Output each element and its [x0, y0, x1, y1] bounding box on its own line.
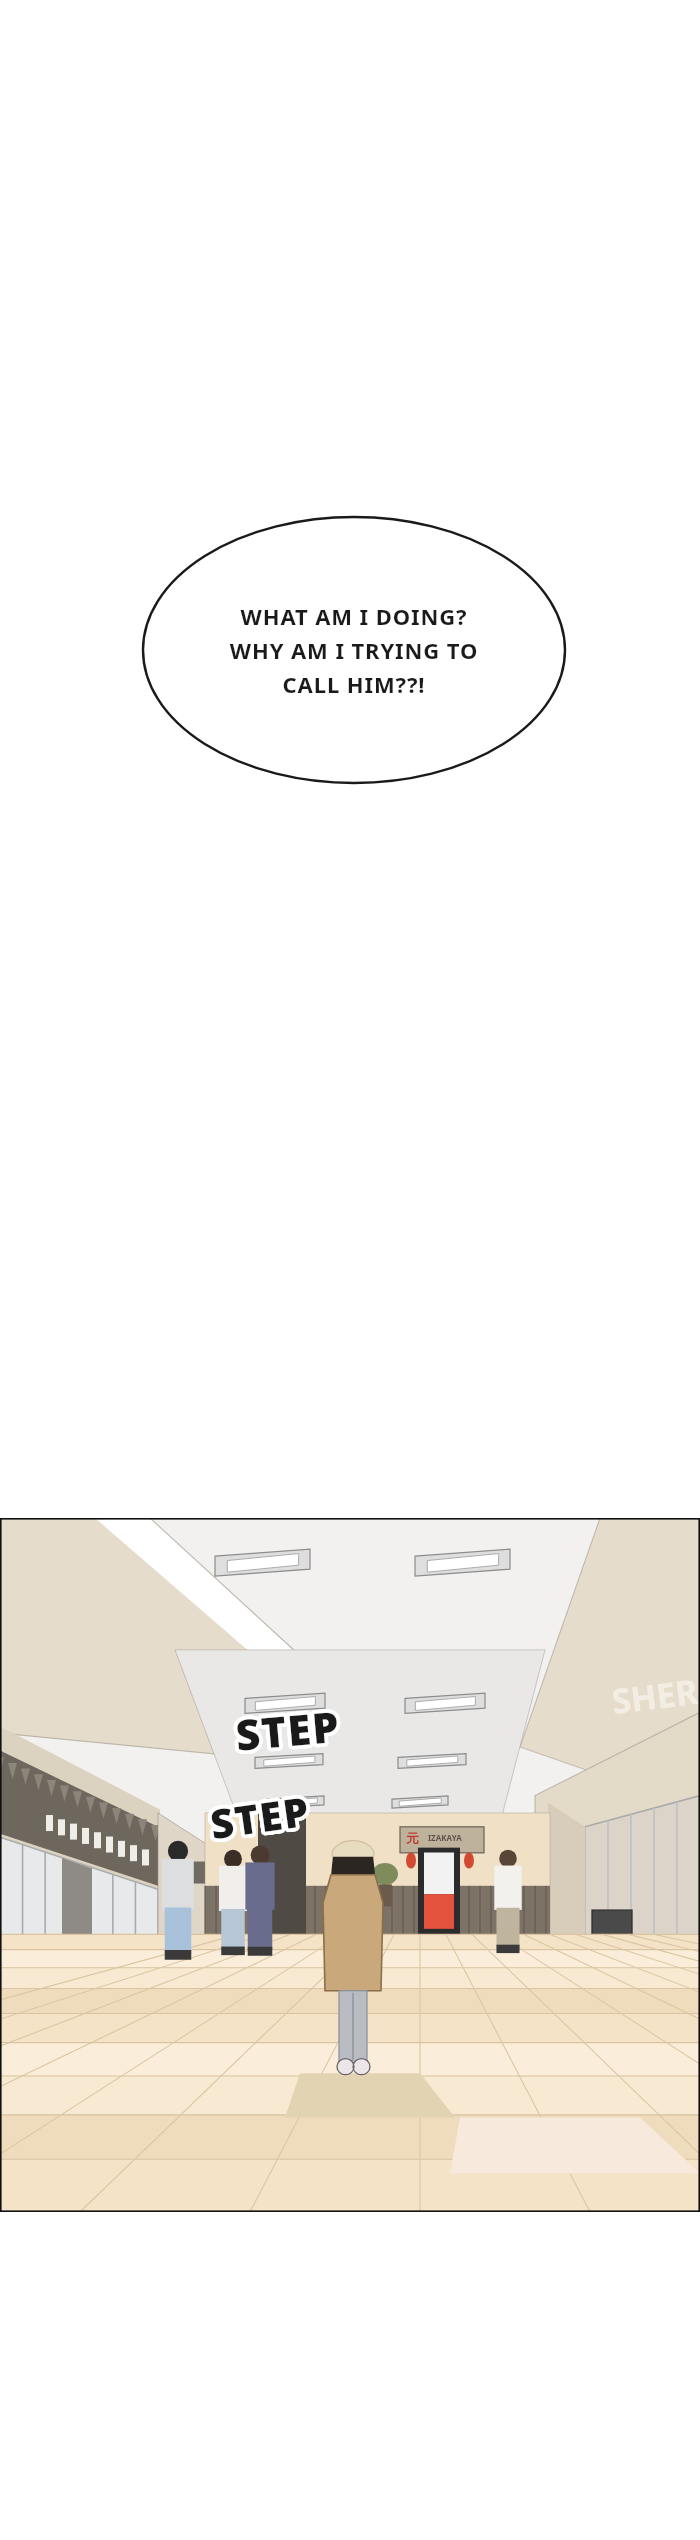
button[interactable]: Webtoon episode panel	[0, 0, 700, 2540]
